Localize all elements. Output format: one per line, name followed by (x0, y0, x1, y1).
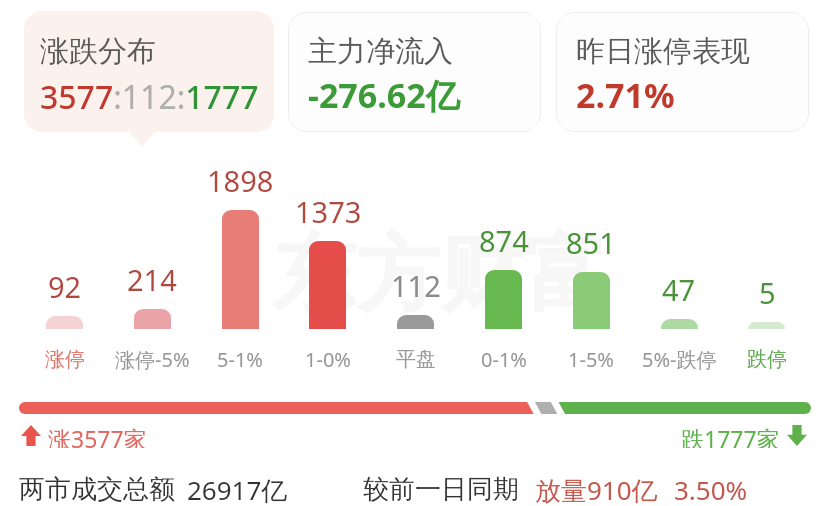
button[interactable]: 上涨 (21, 423, 147, 448)
staticText: 1898 (207, 161, 274, 197)
button[interactable]: 昨日涨停表现 (556, 12, 809, 132)
staticText: 92 (48, 267, 82, 303)
staticText: 1-0% (305, 346, 351, 372)
staticText: 874 (479, 221, 529, 257)
button[interactable]: 主力净流入 (288, 12, 541, 132)
staticText: 214 (127, 260, 177, 296)
staticText: 2.71% (576, 72, 675, 118)
other: 下跌 (787, 425, 807, 446)
staticText: 主力净流入 (308, 33, 453, 70)
staticText: 3577:112:1777 (40, 75, 259, 119)
staticText: 涨停-5% (115, 346, 190, 372)
staticText: 较前一日同期 (363, 473, 519, 506)
staticText: 昨日涨停表现 (576, 33, 750, 70)
staticText: 1-5% (568, 346, 614, 372)
staticText: 涨跌分布 (40, 33, 156, 70)
button[interactable]: 涨跌分布 (24, 11, 274, 132)
staticText: 0-1% (481, 346, 527, 372)
staticText: 47 (662, 270, 696, 306)
staticText: 跌停 (747, 347, 787, 372)
staticText: 851 (566, 223, 616, 259)
staticText: -276.62亿 (308, 72, 460, 118)
staticText: 放量910亿 (535, 472, 658, 506)
staticText: 5-1% (217, 346, 263, 372)
staticText: 5 (759, 273, 776, 309)
staticText: 涨停 (45, 347, 85, 372)
staticText: 5%-跌停 (642, 346, 717, 372)
staticText: 3.50% (674, 472, 748, 506)
staticText: 平盘 (396, 347, 436, 372)
staticText: 112 (391, 266, 441, 302)
staticText: 涨3577家 (48, 423, 147, 448)
other: 上涨 (21, 425, 41, 446)
staticText: 1373 (295, 192, 362, 228)
staticText: 跌1777家 (681, 423, 780, 448)
staticText: 东方财富 (272, 222, 608, 328)
staticText: 26917亿 (187, 472, 288, 506)
button[interactable]: 跌1777家 (681, 423, 807, 448)
staticText: 两市成交总额 (19, 473, 175, 506)
